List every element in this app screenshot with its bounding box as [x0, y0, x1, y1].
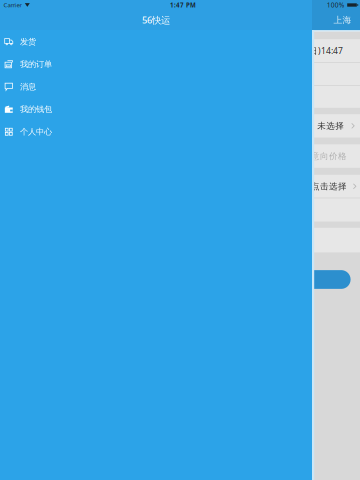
staticText: 100% [327, 0, 345, 10]
staticText: 我的订单 [20, 59, 52, 69]
button[interactable]: 我的订单 [0, 53, 312, 75]
staticText: 意向价格 [311, 151, 347, 161]
staticText: 点击选择 [311, 181, 347, 192]
button[interactable]: 我的钱包 [0, 98, 312, 120]
button[interactable]: 个人中心 [0, 120, 312, 143]
staticText: 未选择 [317, 120, 344, 131]
button[interactable]: 发货 [0, 30, 312, 53]
staticText: Carrier [3, 1, 21, 9]
staticText: 上海 [334, 14, 352, 25]
staticText: 消息 [20, 82, 36, 92]
staticText: 日)14:47 [309, 45, 343, 56]
staticText: 1:47 PM [170, 1, 196, 9]
staticText: 个人中心 [20, 127, 52, 137]
staticText: 56快运 [142, 14, 170, 26]
staticText: 我的钱包 [20, 104, 52, 114]
staticText: 发货 [20, 37, 36, 47]
button[interactable]: 消息 [0, 75, 312, 98]
